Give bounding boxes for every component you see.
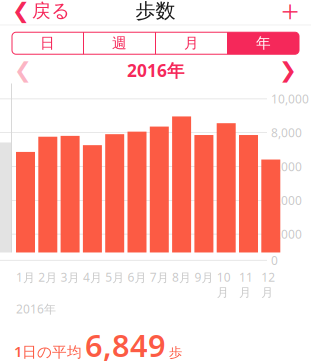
staticText: 12月: [261, 269, 275, 300]
button[interactable]: 追加: [273, 0, 307, 32]
staticText: 0: [271, 252, 278, 268]
staticText: 1月: [16, 269, 35, 285]
button[interactable]: 前の年: [4, 54, 42, 86]
staticText: 6,000: [271, 158, 302, 174]
staticText: ❮: [12, 0, 30, 23]
staticText: 2月: [38, 269, 57, 285]
staticText: 4月: [83, 269, 102, 285]
staticText: 4,000: [271, 192, 302, 208]
staticText: 2016年: [127, 59, 184, 82]
staticText: 2,000: [271, 226, 302, 242]
button[interactable]: 月: [156, 32, 227, 54]
staticText: 10,000: [271, 91, 309, 107]
button[interactable]: 次の年: [269, 54, 307, 86]
button[interactable]: 週: [84, 32, 155, 54]
staticText: 歩: [169, 344, 182, 361]
staticText: 7月: [150, 269, 169, 285]
staticText: 2016年: [16, 301, 56, 317]
staticText: 週: [112, 34, 127, 52]
staticText: 8,000: [271, 125, 302, 141]
staticText: 日: [40, 34, 55, 52]
staticText: 9月: [194, 269, 213, 285]
staticText: 歩数: [135, 0, 175, 23]
button[interactable]: ❮: [4, 0, 78, 27]
staticText: +: [281, 0, 299, 32]
staticText: 月: [184, 34, 199, 52]
staticText: 10月: [217, 269, 231, 300]
staticText: 8月: [172, 269, 191, 285]
button[interactable]: 年: [228, 32, 299, 54]
button[interactable]: 日: [12, 32, 83, 54]
staticText: 1日の平均: [14, 342, 82, 361]
staticText: ❯: [279, 58, 297, 82]
staticText: 11月: [239, 269, 253, 300]
staticText: 3月: [61, 269, 80, 285]
staticText: 戻る: [32, 0, 70, 22]
staticText: 6月: [127, 269, 146, 285]
staticText: 6,849: [85, 325, 166, 363]
staticText: 年: [256, 34, 271, 52]
staticText: 5月: [105, 269, 124, 285]
staticText: ❮: [14, 58, 32, 82]
